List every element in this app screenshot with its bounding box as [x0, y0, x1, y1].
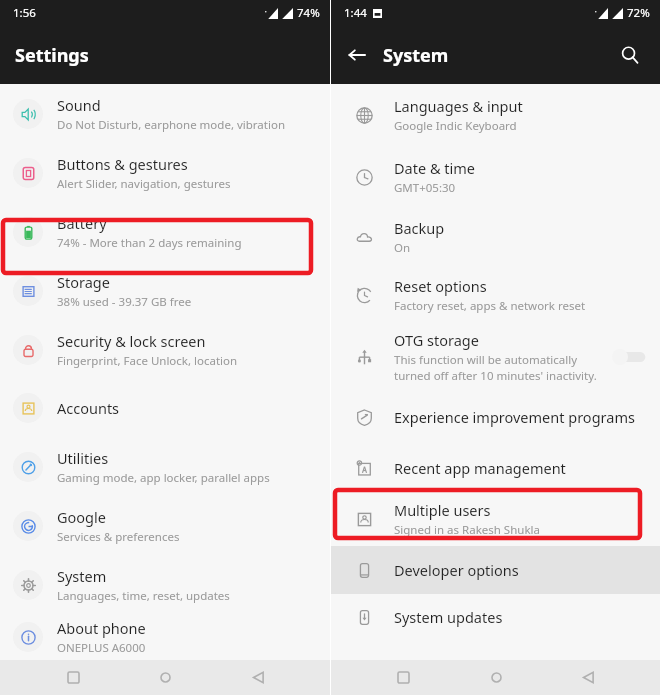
staticText: GMT+05:30: [394, 180, 456, 196]
staticText: 38% used - 39.37 GB free: [57, 294, 192, 310]
button[interactable]: Battery: [0, 202, 330, 261]
button[interactable]: OTG storage toggle: [612, 349, 646, 365]
staticText: This function will be automatically: [394, 352, 578, 368]
button[interactable]: Home: [476, 660, 516, 695]
button[interactable]: Languages & input: [331, 84, 660, 146]
staticText: Developer options: [394, 560, 519, 580]
staticText: Signed in as Rakesh Shukla: [394, 522, 540, 538]
button[interactable]: Recents: [53, 660, 93, 695]
staticText: Backup: [394, 218, 445, 238]
button[interactable]: Multiple users: [331, 492, 660, 546]
button[interactable]: Accounts: [0, 379, 330, 437]
button[interactable]: Recent app management: [331, 444, 660, 492]
staticText: Fingerprint, Face Unlock, location: [57, 353, 238, 369]
staticText: 1:44: [344, 5, 367, 21]
button[interactable]: Back: [238, 660, 278, 695]
button[interactable]: OTG storage: [331, 324, 660, 390]
staticText: 74%: [297, 5, 320, 21]
staticText: About phone: [57, 618, 146, 638]
staticText: System: [383, 43, 449, 68]
staticText: Settings: [15, 43, 89, 68]
button[interactable]: Utilities: [0, 437, 330, 496]
staticText: OTG storage: [394, 330, 479, 350]
button[interactable]: Backup: [331, 208, 660, 266]
staticText: Alert Slider, navigation, gestures: [57, 176, 231, 192]
staticText: 1:56: [13, 5, 36, 21]
staticText: Languages & input: [394, 96, 523, 116]
button[interactable]: Back: [339, 37, 375, 73]
button[interactable]: Developer options: [331, 546, 660, 594]
staticText: On: [394, 240, 411, 256]
button[interactable]: Date & time: [331, 146, 660, 208]
button[interactable]: Experience improvement programs: [331, 390, 660, 444]
staticText: Reset options: [394, 276, 487, 296]
staticText: turned off after 10 minutes' inactivity.: [394, 368, 597, 384]
staticText: Services & preferences: [57, 529, 180, 545]
button[interactable]: About phone: [0, 614, 330, 660]
button[interactable]: System updates: [331, 594, 660, 640]
staticText: Sound: [57, 95, 101, 115]
button[interactable]: Back: [568, 660, 608, 695]
staticText: 72%: [627, 5, 650, 21]
button[interactable]: Storage: [0, 261, 330, 320]
button[interactable]: Home: [145, 660, 185, 695]
staticText: Multiple users: [394, 500, 491, 520]
staticText: Battery: [57, 213, 107, 233]
staticText: Do Not Disturb, earphone mode, vibration: [57, 117, 285, 133]
staticText: Accounts: [57, 398, 120, 418]
staticText: Recent app management: [394, 458, 566, 478]
staticText: Experience improvement programs: [394, 407, 635, 427]
staticText: Google Indic Keyboard: [394, 118, 517, 134]
button[interactable]: Security & lock screen: [0, 320, 330, 379]
staticText: System updates: [394, 607, 503, 627]
staticText: Google: [57, 507, 106, 527]
staticText: Factory reset, apps & network reset: [394, 298, 586, 314]
button[interactable]: Search: [612, 37, 648, 73]
staticText: 74% - More than 2 days remaining: [57, 235, 242, 251]
button[interactable]: Recents: [383, 660, 423, 695]
staticText: Storage: [57, 272, 110, 292]
staticText: Utilities: [57, 448, 109, 468]
button[interactable]: Google: [0, 496, 330, 555]
button[interactable]: Sound: [0, 84, 330, 143]
button[interactable]: Reset options: [331, 266, 660, 324]
button[interactable]: Buttons & gestures: [0, 143, 330, 202]
staticText: Gaming mode, app locker, parallel apps: [57, 470, 270, 486]
staticText: Date & time: [394, 158, 475, 178]
button[interactable]: System: [0, 555, 330, 614]
staticText: ONEPLUS A6000: [57, 640, 146, 656]
staticText: System: [57, 566, 107, 586]
staticText: Security & lock screen: [57, 331, 206, 351]
staticText: Buttons & gestures: [57, 154, 188, 174]
staticText: Languages, time, reset, updates: [57, 588, 230, 604]
